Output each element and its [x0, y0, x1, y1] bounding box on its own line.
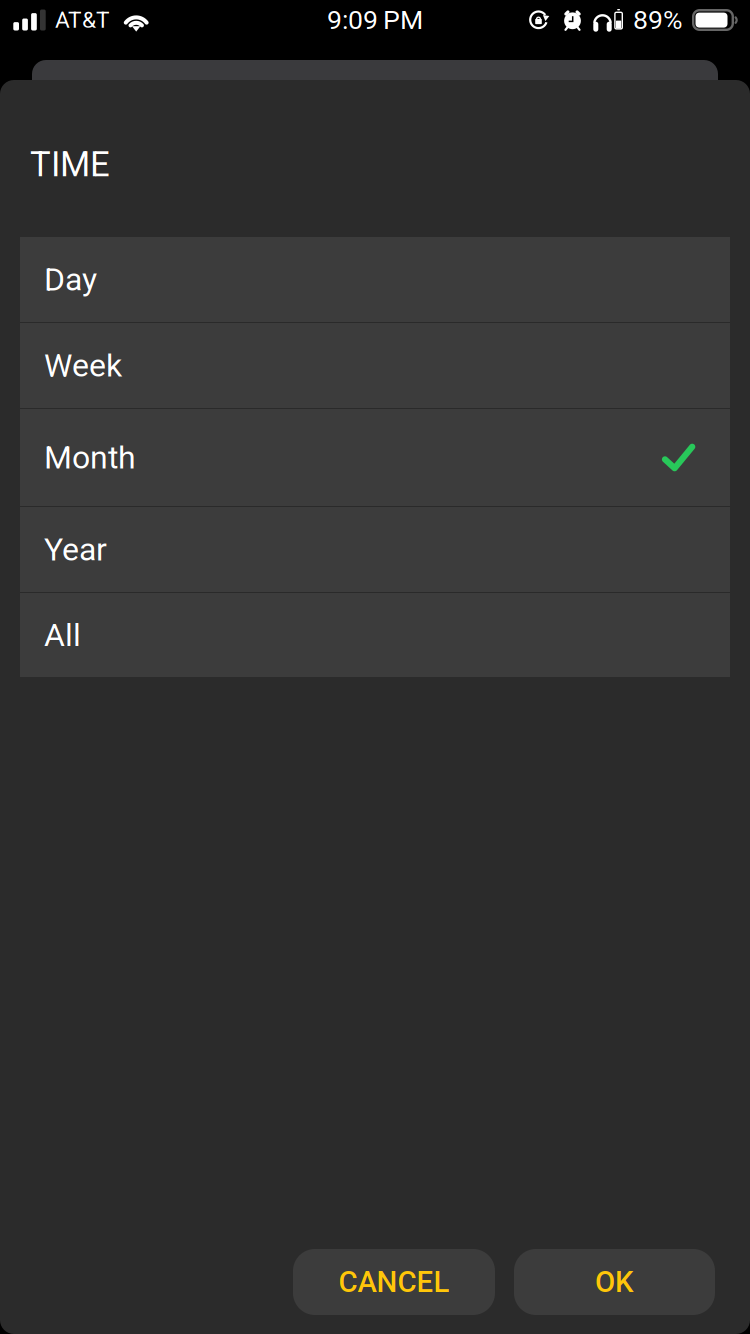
staticText: All [44, 616, 81, 654]
staticText: CANCEL [338, 1265, 449, 1299]
button[interactable]: Week [20, 323, 730, 408]
button[interactable]: CANCEL [293, 1249, 495, 1315]
staticText: 9:09 PM [327, 4, 423, 36]
button[interactable]: Year [20, 507, 730, 592]
staticText: TIME [30, 144, 110, 185]
button[interactable]: Month [20, 409, 730, 506]
staticText: Month [44, 439, 136, 476]
button[interactable]: Day [20, 237, 730, 322]
staticText: Year [44, 531, 107, 568]
staticText: Day [44, 261, 97, 298]
staticText: OK [595, 1265, 634, 1299]
staticText: 89% [633, 4, 683, 36]
button[interactable]: OK [514, 1249, 715, 1315]
button[interactable]: All [20, 593, 730, 677]
staticText: Week [44, 347, 122, 384]
staticText: AT&T [55, 7, 110, 33]
